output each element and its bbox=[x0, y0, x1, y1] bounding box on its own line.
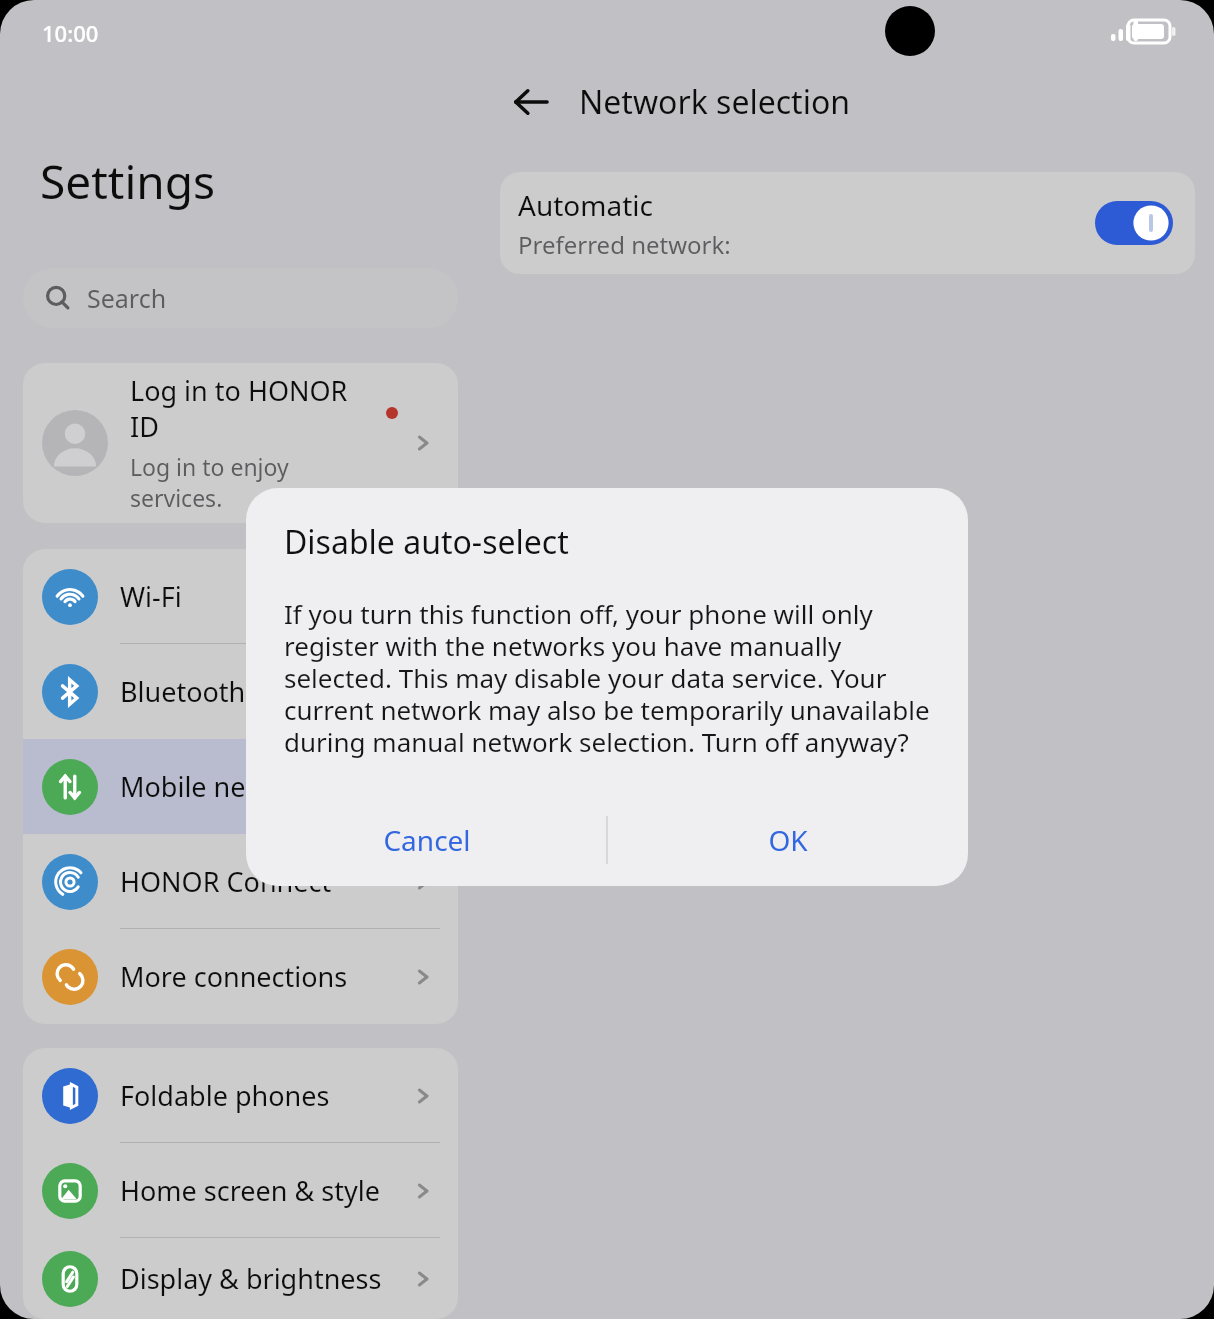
staticText: Disable auto-select bbox=[284, 520, 569, 564]
staticText: Automatic bbox=[518, 186, 653, 224]
button[interactable]: Display & brightness bbox=[23, 1238, 458, 1319]
button[interactable]: More connections bbox=[23, 929, 458, 1024]
staticText: Display & brightness bbox=[120, 1260, 382, 1297]
button[interactable]: Home screen & style bbox=[23, 1143, 458, 1238]
staticText: Preferred network: bbox=[518, 228, 731, 261]
staticText: Log in to enjoy services. bbox=[130, 451, 370, 514]
staticText: Log in to HONOR ID bbox=[130, 372, 370, 445]
button[interactable]: Wi-Fi bbox=[23, 549, 458, 644]
staticText: If you turn this function off, your phon… bbox=[284, 596, 938, 760]
staticText: Settings bbox=[40, 150, 216, 213]
button[interactable]: Automatic bbox=[500, 172, 1195, 274]
staticText: Search bbox=[87, 281, 167, 315]
staticText: Cancel bbox=[383, 821, 471, 859]
staticText: Bluetooth bbox=[120, 673, 246, 710]
button[interactable]: Log in to HONOR ID bbox=[23, 363, 458, 523]
staticText: Foldable phones bbox=[120, 1077, 330, 1114]
staticText: More connections bbox=[120, 958, 348, 995]
button[interactable]: HONOR Connect bbox=[23, 834, 458, 929]
button[interactable]: Mobile network bbox=[23, 739, 458, 834]
button[interactable]: OK bbox=[607, 794, 968, 886]
staticText: OK bbox=[768, 821, 808, 859]
button[interactable]: Cancel bbox=[246, 794, 607, 886]
staticText: Home screen & style bbox=[120, 1172, 380, 1209]
button[interactable]: Automatic toggle bbox=[1095, 201, 1173, 245]
staticText: Wi-Fi bbox=[120, 578, 182, 615]
staticText: Mobile network bbox=[120, 768, 319, 805]
staticText: HONOR Connect bbox=[120, 863, 332, 900]
button[interactable]: Back bbox=[503, 74, 559, 130]
staticText: Network selection bbox=[579, 80, 851, 124]
staticText: 10:00 bbox=[42, 18, 99, 48]
button[interactable]: Bluetooth bbox=[23, 644, 458, 739]
button[interactable]: Search bbox=[23, 268, 458, 328]
button[interactable]: Foldable phones bbox=[23, 1048, 458, 1143]
